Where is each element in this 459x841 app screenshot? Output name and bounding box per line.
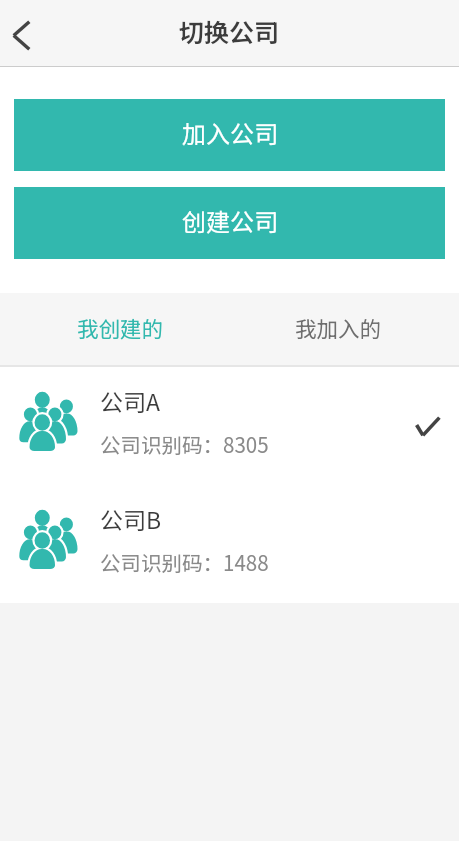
button[interactable]: 创建公司 <box>14 187 445 259</box>
staticText: 公司识别码：1488 <box>100 547 269 577</box>
button[interactable]: 加入公司 <box>14 99 445 171</box>
button[interactable]: 我创建的 <box>12 293 229 365</box>
button[interactable]: 公司B <box>0 485 459 603</box>
staticText: 加入公司 <box>182 115 278 150</box>
button[interactable]: 我加入的 <box>229 293 447 365</box>
staticText: 公司识别码：8305 <box>100 429 269 459</box>
staticText: 创建公司 <box>182 203 278 238</box>
button[interactable]: 公司A <box>0 367 459 485</box>
staticText: 公司A <box>100 384 160 417</box>
staticText: 切换公司 <box>179 13 280 49</box>
button[interactable]: Back <box>0 0 44 66</box>
staticText: 我加入的 <box>295 312 382 343</box>
staticText: 我创建的 <box>77 312 164 343</box>
other: Selected <box>415 416 441 437</box>
staticText: 公司B <box>100 502 162 535</box>
